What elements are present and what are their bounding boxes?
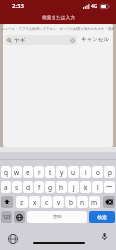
staticText: p [108,168,112,177]
staticText: r [38,168,41,177]
staticText: 4G [91,3,98,10]
staticText: e [26,168,30,177]
staticText: ー [106,183,113,191]
staticText: k [84,183,88,192]
button[interactable]: d [23,181,33,193]
staticText: s [15,183,19,192]
staticText: 検索 [97,214,107,220]
staticText: g [48,183,52,192]
staticText: t [49,168,52,177]
button[interactable]: w [12,166,22,178]
button[interactable]: Dictation [99,231,110,242]
button[interactable]: l [92,181,103,193]
button[interactable]: ヤギ [5,35,77,45]
button[interactable]: u [68,166,79,178]
button[interactable]: t [45,166,55,178]
button[interactable]: y [56,166,67,178]
button[interactable]: q [1,166,11,178]
button[interactable]: Shift [1,196,13,208]
button[interactable]: m [89,196,100,208]
staticText: ヤギ [14,37,26,44]
button[interactable]: z [16,196,28,208]
button[interactable]: 検索 [89,211,115,223]
staticText: l [97,183,99,192]
staticText: n [80,198,85,207]
button[interactable]: i [80,166,91,178]
staticText: 123 [3,214,11,220]
staticText: ニュース・アプリを検索して下さい・すべての結果が表示されます・最新情報 [0,27,116,31]
staticText: x [33,198,37,207]
button[interactable]: キャンセル [80,34,111,45]
staticText: f [38,183,41,192]
button[interactable]: c [41,196,52,208]
staticText: d [26,183,30,192]
button[interactable]: 空白 [27,211,87,223]
staticText: h [59,183,64,192]
staticText: 2:33 [12,2,24,10]
staticText: v [57,198,61,207]
button[interactable]: b [65,196,76,208]
button[interactable]: s [12,181,22,193]
staticText: 検索または入力 [42,15,75,21]
button[interactable]: Clear text [70,38,75,43]
staticText: i [85,168,87,177]
button[interactable]: g [45,181,55,193]
button[interactable]: p [104,166,115,178]
staticText: y [60,168,64,177]
staticText: a [4,183,8,192]
staticText: u [71,168,76,177]
button[interactable]: 123 [1,211,12,223]
button[interactable]: a [1,181,11,193]
staticText: j [73,183,75,192]
button[interactable]: ー [104,181,115,193]
button[interactable]: o [92,166,103,178]
staticText: z [20,198,24,207]
staticText: キャンセル [81,36,110,43]
button[interactable]: Switch keyboard [7,233,18,244]
staticText: m [91,198,98,207]
button[interactable]: r [34,166,44,178]
staticText: b [69,198,73,207]
staticText: c [45,198,49,207]
button[interactable]: n [77,196,88,208]
button[interactable]: h [56,181,67,193]
staticText: q [4,168,8,177]
button[interactable]: x [29,196,40,208]
button[interactable]: Backspace [103,196,115,208]
staticText: 空白 [53,214,62,220]
button[interactable]: j [68,181,79,193]
button[interactable]: k [80,181,91,193]
button[interactable]: f [34,181,44,193]
button[interactable]: e [23,166,33,178]
button[interactable]: Emoji keyboard [14,211,25,223]
button[interactable]: v [53,196,64,208]
staticText: w [14,168,20,177]
staticText: o [96,168,100,177]
